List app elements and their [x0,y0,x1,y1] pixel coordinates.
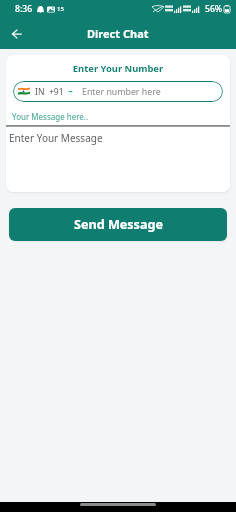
staticText: Send Message [74,216,163,233]
staticText: Enter Your Message [9,131,103,145]
staticText: 8:36 [15,3,33,15]
button[interactable]: Back [5,22,29,46]
staticText: Enter Your Number [6,62,230,75]
staticText: Your Message here.. [12,111,89,122]
staticText: Direct Chat [87,26,149,41]
staticText: IN +91 [35,86,64,98]
button[interactable]: IN +91 [13,81,223,102]
staticText: 56% [205,3,223,15]
staticText: Enter number here [82,86,161,98]
button[interactable]: Send Message [9,208,227,241]
staticText: 15 [57,5,64,13]
